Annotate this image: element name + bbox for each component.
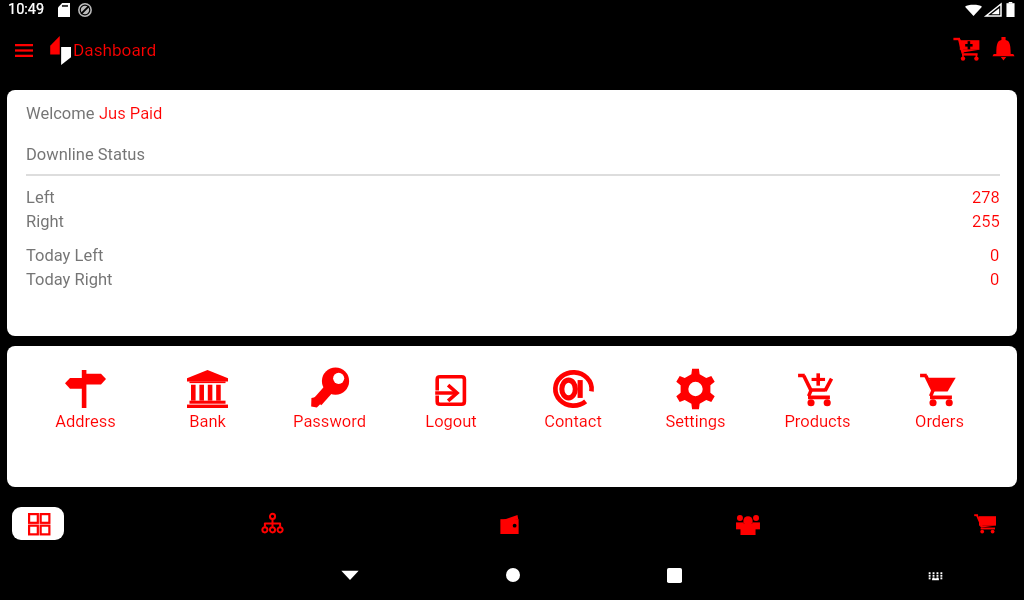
staticText: Logout [425, 412, 477, 431]
button[interactable]: Back [328, 555, 372, 595]
staticText: Jus Paid [99, 104, 163, 123]
button[interactable]: Recents [652, 555, 696, 595]
button[interactable]: Menu [9, 35, 39, 65]
button[interactable]: Address [24, 370, 146, 431]
staticText: Downline Status [26, 145, 145, 164]
staticText: Address [55, 412, 116, 431]
staticText: Dashboard [73, 40, 157, 60]
button[interactable]: Keyboard [913, 555, 957, 595]
button[interactable]: Wallet [487, 504, 531, 544]
staticText: 0 [990, 270, 1000, 289]
button[interactable]: Dashboard [12, 507, 64, 540]
button[interactable]: Orders [878, 370, 1000, 431]
staticText: 255 [972, 212, 1000, 231]
button[interactable]: Products [756, 370, 878, 431]
button[interactable]: Password [268, 370, 390, 431]
staticText: Today Left [26, 246, 104, 265]
staticText: Password [293, 412, 366, 431]
button[interactable]: Settings [634, 370, 756, 431]
staticText: Settings [665, 412, 726, 431]
button[interactable]: Contact [512, 370, 634, 431]
button[interactable]: Genealogy [250, 504, 294, 544]
staticText: Contact [544, 412, 602, 431]
staticText: Welcome [26, 104, 99, 123]
staticText: 0 [990, 246, 1000, 265]
button[interactable]: Bank [146, 370, 268, 431]
staticText: Today Right [26, 270, 113, 289]
button[interactable]: Cart [963, 504, 1007, 544]
staticText: Orders [915, 412, 964, 431]
button[interactable]: Team [726, 504, 770, 544]
button[interactable]: Home [491, 555, 535, 595]
staticText: Products [784, 412, 851, 431]
staticText: Bank [189, 412, 226, 431]
staticText: 278 [972, 188, 1000, 207]
button[interactable]: Logout [390, 370, 512, 431]
staticText: Right [26, 212, 64, 231]
button[interactable]: Notifications [986, 33, 1020, 67]
staticText: 10:49 [8, 1, 45, 18]
staticText: Left [26, 188, 55, 207]
button[interactable]: Add to cart [950, 33, 984, 67]
